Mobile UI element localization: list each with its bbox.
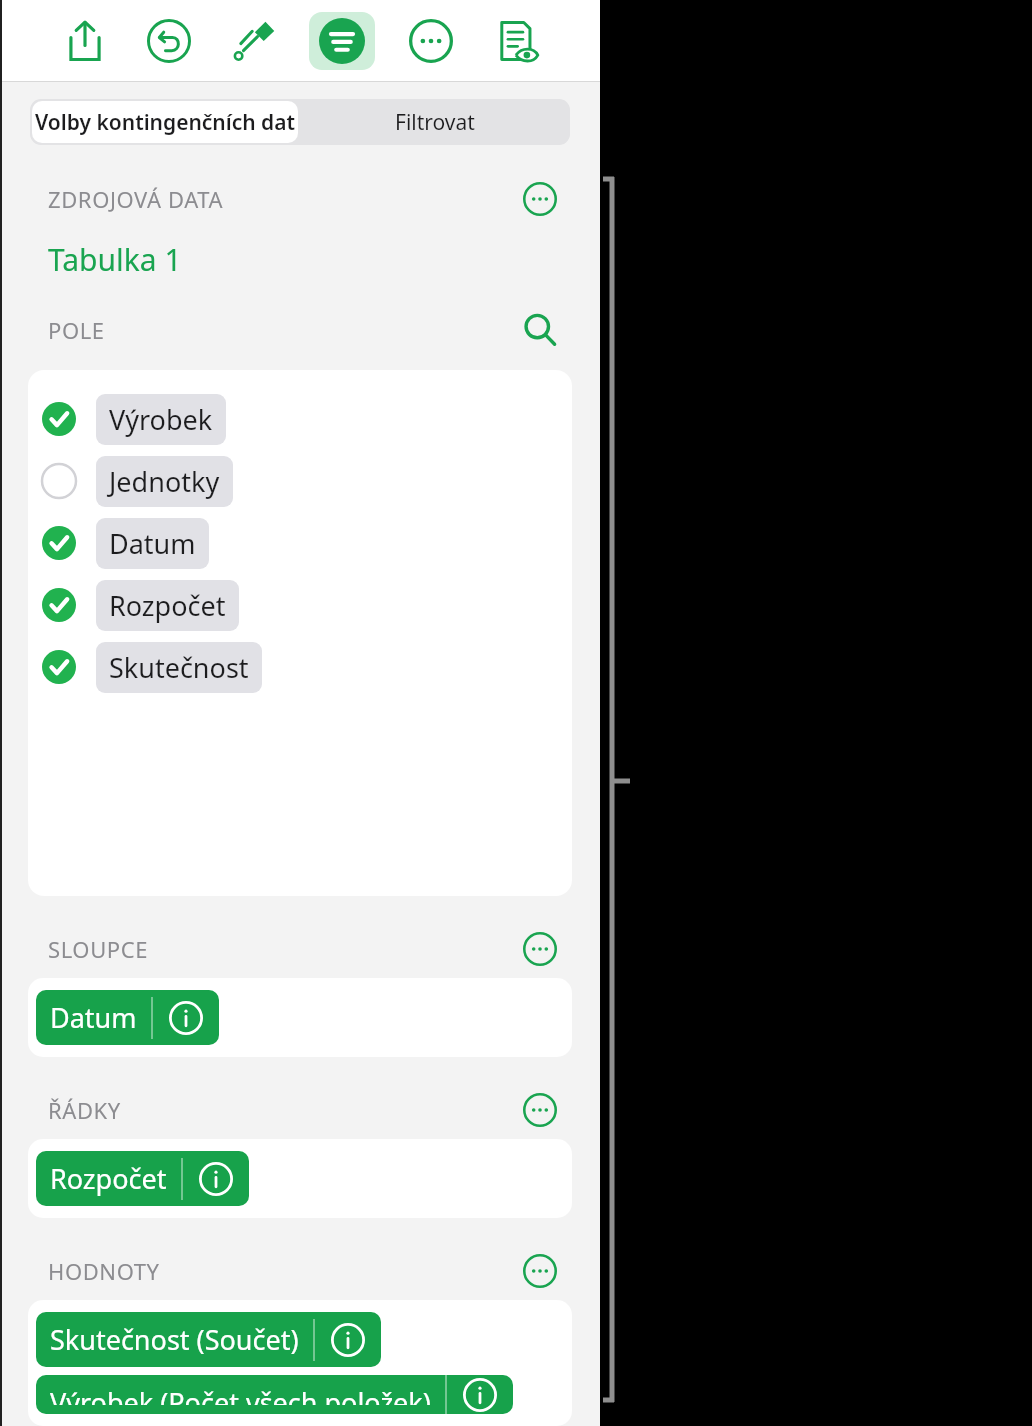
button[interactable]: Filtrovat bbox=[300, 99, 570, 145]
button[interactable]: More options bbox=[520, 182, 560, 216]
staticText: SLOUPCE bbox=[48, 934, 149, 964]
button[interactable]: Jednotky bbox=[28, 450, 572, 512]
button[interactable]: Rozpočet bbox=[28, 574, 572, 636]
staticText: Datum bbox=[50, 999, 137, 1036]
button[interactable]: Preview bbox=[486, 12, 544, 70]
button[interactable]: Undo bbox=[140, 12, 198, 70]
button[interactable]: Share bbox=[56, 12, 114, 70]
staticText: Tabulka 1 bbox=[48, 239, 182, 280]
button[interactable]: Info bbox=[183, 1155, 249, 1203]
button[interactable]: Info bbox=[153, 994, 219, 1042]
button[interactable]: Volby kontingenčních dat bbox=[32, 101, 298, 143]
button[interactable]: Info bbox=[315, 1316, 381, 1364]
button[interactable]: Search bbox=[520, 313, 560, 347]
button[interactable]: Skutečnost bbox=[28, 636, 572, 698]
staticText: Rozpočet bbox=[50, 1160, 167, 1197]
staticText: POLE bbox=[48, 315, 105, 345]
staticText: Jednotky bbox=[109, 463, 220, 500]
button[interactable]: More options bbox=[520, 932, 560, 966]
staticText: Filtrovat bbox=[395, 108, 475, 137]
staticText: Výrobek (Počet všech položek) bbox=[50, 1384, 431, 1405]
button[interactable]: Tabulka 1 bbox=[48, 239, 182, 280]
button[interactable]: Datum bbox=[36, 990, 219, 1045]
staticText: Výrobek bbox=[109, 401, 213, 438]
staticText: ZDROJOVÁ DATA bbox=[48, 184, 224, 214]
button[interactable]: Datum bbox=[28, 512, 572, 574]
staticText: Skutečnost bbox=[109, 649, 249, 686]
button[interactable]: Výrobek (Počet všech položek) bbox=[36, 1375, 513, 1414]
button[interactable]: Format bbox=[225, 12, 283, 70]
staticText: Rozpočet bbox=[109, 587, 226, 624]
button[interactable]: More options bbox=[520, 1254, 560, 1288]
staticText: Datum bbox=[109, 525, 196, 562]
staticText: ŘÁDKY bbox=[48, 1095, 121, 1125]
button[interactable]: Rozpočet bbox=[36, 1151, 249, 1206]
button[interactable]: Výrobek bbox=[28, 388, 572, 450]
button[interactable]: More options bbox=[520, 1093, 560, 1127]
button[interactable]: Skutečnost (Součet) bbox=[36, 1312, 381, 1367]
button[interactable]: Organize bbox=[309, 12, 375, 70]
staticText: HODNOTY bbox=[48, 1256, 160, 1286]
staticText: Volby kontingenčních dat bbox=[35, 108, 296, 137]
button[interactable]: Info bbox=[447, 1375, 513, 1414]
staticText: Skutečnost (Součet) bbox=[50, 1321, 299, 1358]
button[interactable]: More bbox=[402, 12, 460, 70]
